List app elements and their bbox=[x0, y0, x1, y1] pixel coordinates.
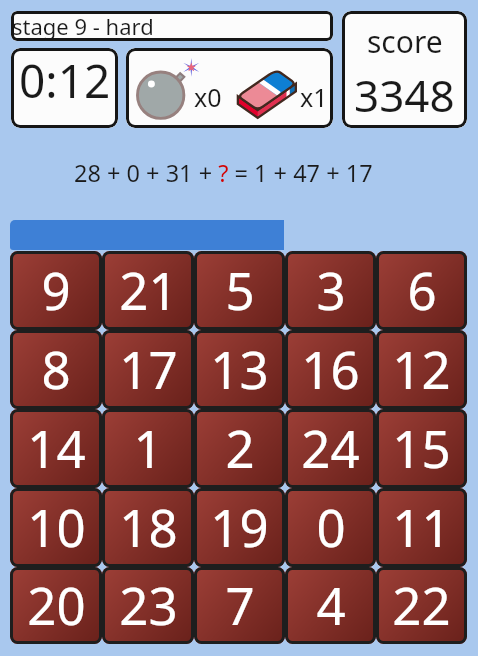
staticText: 0 bbox=[316, 492, 346, 561]
button[interactable]: 0 bbox=[285, 488, 376, 567]
other: Bomb bbox=[134, 58, 192, 118]
staticText: 4 bbox=[316, 570, 346, 639]
staticText: 24 bbox=[301, 413, 360, 482]
button[interactable]: 5 bbox=[194, 251, 285, 330]
staticText: 14 bbox=[27, 413, 86, 482]
staticText: 11 bbox=[392, 492, 451, 561]
button[interactable]: 18 bbox=[102, 488, 194, 567]
button[interactable]: 11 bbox=[376, 488, 467, 567]
button[interactable]: 21 bbox=[102, 251, 194, 330]
staticText: 8 bbox=[41, 334, 71, 403]
staticText: 22 bbox=[392, 570, 451, 639]
button[interactable]: 9 bbox=[10, 251, 102, 330]
button[interactable]: 8 bbox=[10, 330, 102, 409]
button[interactable]: 13 bbox=[194, 330, 285, 409]
button[interactable]: 23 bbox=[102, 567, 194, 644]
button[interactable]: 10 bbox=[10, 488, 102, 567]
staticText: 13 bbox=[210, 334, 269, 403]
staticText: 9 bbox=[41, 255, 71, 324]
button[interactable]: 22 bbox=[376, 567, 467, 644]
button[interactable]: 7 bbox=[194, 567, 285, 644]
button[interactable]: 20 bbox=[10, 567, 102, 644]
staticText: 3348 bbox=[354, 65, 455, 125]
button[interactable]: 2 bbox=[194, 409, 285, 488]
button[interactable]: 24 bbox=[285, 409, 376, 488]
staticText: 2 bbox=[225, 413, 255, 482]
staticText: 0:12 bbox=[19, 49, 111, 112]
staticText: x0 bbox=[194, 80, 222, 114]
staticText: 28 + 0 + 31 + ? = 1 + 47 + 17 bbox=[74, 157, 373, 189]
staticText: 16 bbox=[301, 334, 360, 403]
staticText: stage 9 - hard bbox=[12, 11, 154, 41]
staticText: x1 bbox=[300, 80, 328, 114]
staticText: 5 bbox=[225, 255, 255, 324]
button[interactable]: 17 bbox=[102, 330, 194, 409]
staticText: 21 bbox=[119, 255, 178, 324]
staticText: 3 bbox=[316, 255, 346, 324]
button[interactable]: 19 bbox=[194, 488, 285, 567]
staticText: 17 bbox=[119, 334, 178, 403]
staticText: 10 bbox=[27, 492, 86, 561]
button[interactable]: 14 bbox=[10, 409, 102, 488]
staticText: score bbox=[367, 21, 443, 62]
button[interactable]: 1 bbox=[102, 409, 194, 488]
button[interactable]: 12 bbox=[376, 330, 467, 409]
staticText: 12 bbox=[392, 334, 451, 403]
button[interactable]: 4 bbox=[285, 567, 376, 644]
other: Eraser bbox=[236, 59, 298, 117]
staticText: 20 bbox=[27, 570, 86, 639]
staticText: 6 bbox=[407, 255, 437, 324]
staticText: 7 bbox=[225, 570, 255, 639]
button[interactable]: 3 bbox=[285, 251, 376, 330]
button[interactable]: 6 bbox=[376, 251, 467, 330]
staticText: 15 bbox=[392, 413, 451, 482]
button[interactable]: 16 bbox=[285, 330, 376, 409]
button[interactable]: 15 bbox=[376, 409, 467, 488]
staticText: 1 bbox=[133, 413, 163, 482]
staticText: 23 bbox=[119, 570, 178, 639]
staticText: 19 bbox=[210, 492, 269, 561]
staticText: 18 bbox=[119, 492, 178, 561]
